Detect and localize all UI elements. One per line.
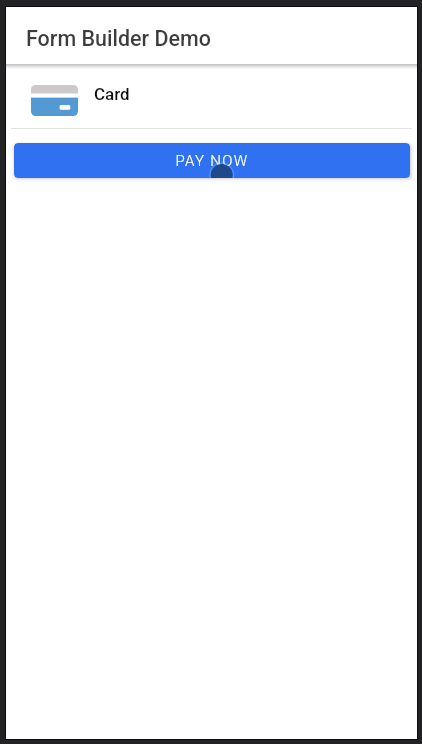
staticText: Card <box>94 84 130 104</box>
button[interactable]: Card payment method <box>6 70 417 128</box>
staticText: Form Builder Demo <box>26 26 212 51</box>
staticText: PAY NOW <box>175 152 249 170</box>
button[interactable]: PAY NOW <box>14 143 410 178</box>
other: Card payment method <box>31 85 78 116</box>
